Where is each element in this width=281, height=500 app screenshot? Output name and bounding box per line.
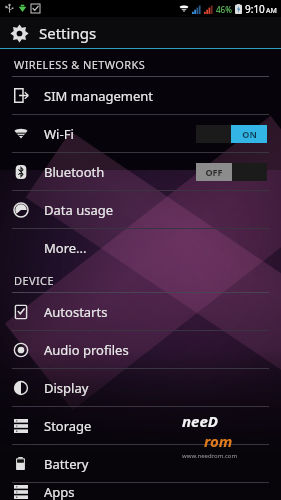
button[interactable]: Audio profiles bbox=[0, 331, 281, 369]
staticText: OFF bbox=[205, 166, 223, 178]
button[interactable]: Data usage bbox=[0, 191, 281, 229]
staticText: SIM management bbox=[44, 87, 154, 105]
staticText: ON bbox=[242, 128, 257, 140]
staticText: Bluetooth bbox=[44, 163, 105, 181]
button[interactable]: Apps bbox=[0, 483, 281, 500]
button[interactable]: Storage bbox=[0, 407, 281, 445]
button[interactable]: More... bbox=[0, 229, 281, 266]
button[interactable]: OFF bbox=[196, 163, 267, 181]
staticText: rom bbox=[204, 431, 233, 451]
button[interactable]: Display bbox=[0, 369, 281, 407]
staticText: 9:10 bbox=[245, 2, 265, 16]
staticText: Data usage bbox=[44, 201, 114, 219]
staticText: AM bbox=[266, 6, 277, 16]
staticText: Storage bbox=[44, 417, 92, 435]
staticText: Settings bbox=[39, 23, 97, 43]
staticText: Wi-Fi bbox=[44, 125, 74, 143]
button[interactable]: ON bbox=[196, 125, 267, 143]
button[interactable]: Bluetooth bbox=[0, 153, 281, 191]
staticText: 46% bbox=[216, 4, 232, 15]
staticText: WIRELESS & NETWORKS bbox=[14, 57, 146, 72]
staticText: More... bbox=[44, 239, 87, 257]
staticText: neeD bbox=[182, 411, 218, 431]
button[interactable]: Autostarts bbox=[0, 293, 281, 331]
staticText: Apps bbox=[44, 483, 75, 500]
staticText: Audio profiles bbox=[44, 341, 129, 359]
staticText: Autostarts bbox=[44, 303, 108, 321]
staticText: Battery bbox=[44, 455, 89, 473]
button[interactable]: Wi-Fi bbox=[0, 115, 281, 153]
staticText: Display bbox=[44, 379, 89, 397]
button[interactable]: Battery bbox=[0, 445, 281, 483]
staticText: www.needrom.com bbox=[182, 452, 238, 460]
staticText: DEVICE bbox=[14, 273, 54, 288]
button[interactable]: SIM management bbox=[0, 77, 281, 115]
